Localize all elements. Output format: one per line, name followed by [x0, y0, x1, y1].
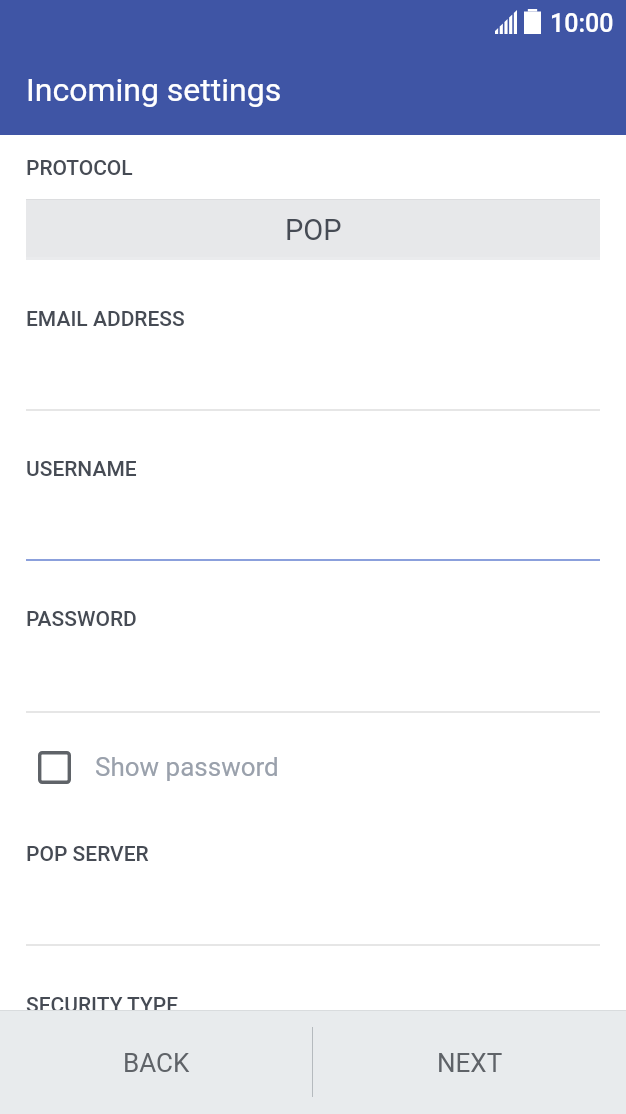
staticText: BACK — [123, 1048, 190, 1078]
other: Signal strength — [495, 10, 517, 34]
staticText: 10:00 — [550, 9, 614, 38]
staticText: Incoming settings — [26, 71, 282, 109]
staticText: Show password — [95, 752, 279, 782]
staticText: EMAIL ADDRESS — [26, 307, 185, 332]
staticText: NEXT — [437, 1048, 503, 1078]
button[interactable]: POP — [26, 199, 600, 260]
button[interactable]: EMAIL ADDRESS — [26, 301, 600, 411]
button[interactable]: USERNAME — [26, 451, 600, 561]
other: Battery full — [524, 9, 541, 34]
button[interactable]: BACK — [0, 1010, 313, 1114]
button[interactable]: PASSWORD — [26, 601, 600, 713]
staticText: POP SERVER — [26, 842, 149, 867]
button[interactable]: NEXT — [313, 1010, 626, 1114]
staticText: POP — [285, 213, 342, 247]
button[interactable]: Show password — [26, 736, 396, 798]
button[interactable]: POP SERVER — [26, 836, 600, 946]
staticText: SECURITY TYPE — [26, 993, 179, 1018]
staticText: PASSWORD — [26, 607, 137, 632]
staticText: PROTOCOL — [26, 156, 133, 181]
staticText: USERNAME — [26, 457, 137, 482]
